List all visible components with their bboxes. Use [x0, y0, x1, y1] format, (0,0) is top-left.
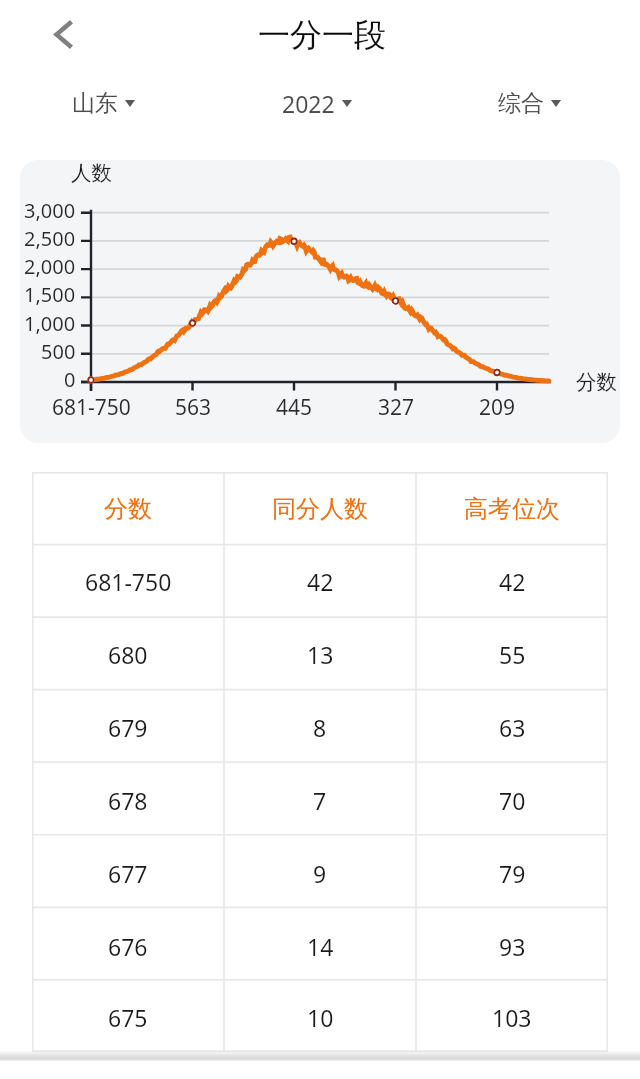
- button[interactable]: 103: [416, 983, 608, 1052]
- staticText: 678: [108, 785, 148, 816]
- staticText: 55: [499, 639, 526, 670]
- button[interactable]: 9: [224, 837, 416, 910]
- button[interactable]: 13: [224, 618, 416, 691]
- staticText: 680: [108, 639, 148, 670]
- staticText: 79: [499, 858, 526, 889]
- staticText: 2,500: [24, 225, 76, 251]
- button[interactable]: 63: [416, 691, 608, 764]
- button[interactable]: 681-750: [32, 545, 224, 618]
- staticText: 1,000: [24, 310, 76, 336]
- button[interactable]: 675: [32, 983, 224, 1052]
- staticText: 103: [492, 1002, 532, 1033]
- staticText: 人数: [71, 160, 112, 186]
- button[interactable]: 8: [224, 691, 416, 764]
- button[interactable]: 高考位次: [416, 472, 608, 545]
- staticText: 681-750: [52, 393, 131, 420]
- staticText: 676: [108, 931, 148, 962]
- staticText: 综合: [498, 89, 544, 118]
- button[interactable]: 677: [32, 837, 224, 910]
- staticText: 8: [313, 712, 327, 743]
- staticText: 93: [499, 931, 526, 962]
- staticText: 500: [41, 338, 76, 364]
- button[interactable]: 678: [32, 764, 224, 837]
- staticText: 14: [307, 931, 334, 962]
- staticText: 42: [307, 566, 334, 597]
- staticText: 2022: [282, 88, 335, 119]
- button[interactable]: 680: [32, 618, 224, 691]
- staticText: 63: [499, 712, 526, 743]
- staticText: 3,000: [24, 197, 76, 223]
- staticText: 同分人数: [272, 494, 368, 524]
- button[interactable]: 7: [224, 764, 416, 837]
- button[interactable]: 676: [32, 910, 224, 983]
- staticText: 563: [175, 393, 212, 420]
- button[interactable]: 42: [224, 545, 416, 618]
- staticText: 42: [499, 566, 526, 597]
- staticText: 0: [64, 366, 76, 392]
- staticText: 高考位次: [464, 494, 560, 524]
- staticText: 2,000: [24, 253, 76, 279]
- button[interactable]: 79: [416, 837, 608, 910]
- button[interactable]: 分数: [32, 472, 224, 545]
- staticText: 山东: [72, 89, 118, 118]
- staticText: 677: [108, 858, 148, 889]
- button[interactable]: 10: [224, 983, 416, 1052]
- staticText: 10: [307, 1002, 334, 1033]
- staticText: 13: [307, 639, 334, 670]
- button[interactable]: 70: [416, 764, 608, 837]
- staticText: 9: [313, 858, 327, 889]
- staticText: 70: [499, 785, 526, 816]
- button[interactable]: 2022: [270, 80, 364, 127]
- staticText: 209: [479, 393, 516, 420]
- button[interactable]: 55: [416, 618, 608, 691]
- staticText: 445: [276, 393, 313, 420]
- button[interactable]: Back: [42, 12, 86, 56]
- button[interactable]: 93: [416, 910, 608, 983]
- staticText: 679: [108, 712, 148, 743]
- staticText: 1,500: [24, 281, 76, 307]
- button[interactable]: 山东: [60, 81, 147, 126]
- staticText: 675: [108, 1002, 148, 1033]
- staticText: 分数: [576, 369, 617, 395]
- button[interactable]: 14: [224, 910, 416, 983]
- staticText: 7: [313, 785, 327, 816]
- staticText: 一分一段: [258, 15, 386, 55]
- staticText: 327: [378, 393, 415, 420]
- button[interactable]: 679: [32, 691, 224, 764]
- staticText: 分数: [104, 494, 152, 524]
- button[interactable]: 综合: [486, 81, 573, 126]
- staticText: 681-750: [85, 566, 172, 597]
- button[interactable]: 同分人数: [224, 472, 416, 545]
- button[interactable]: 42: [416, 545, 608, 618]
